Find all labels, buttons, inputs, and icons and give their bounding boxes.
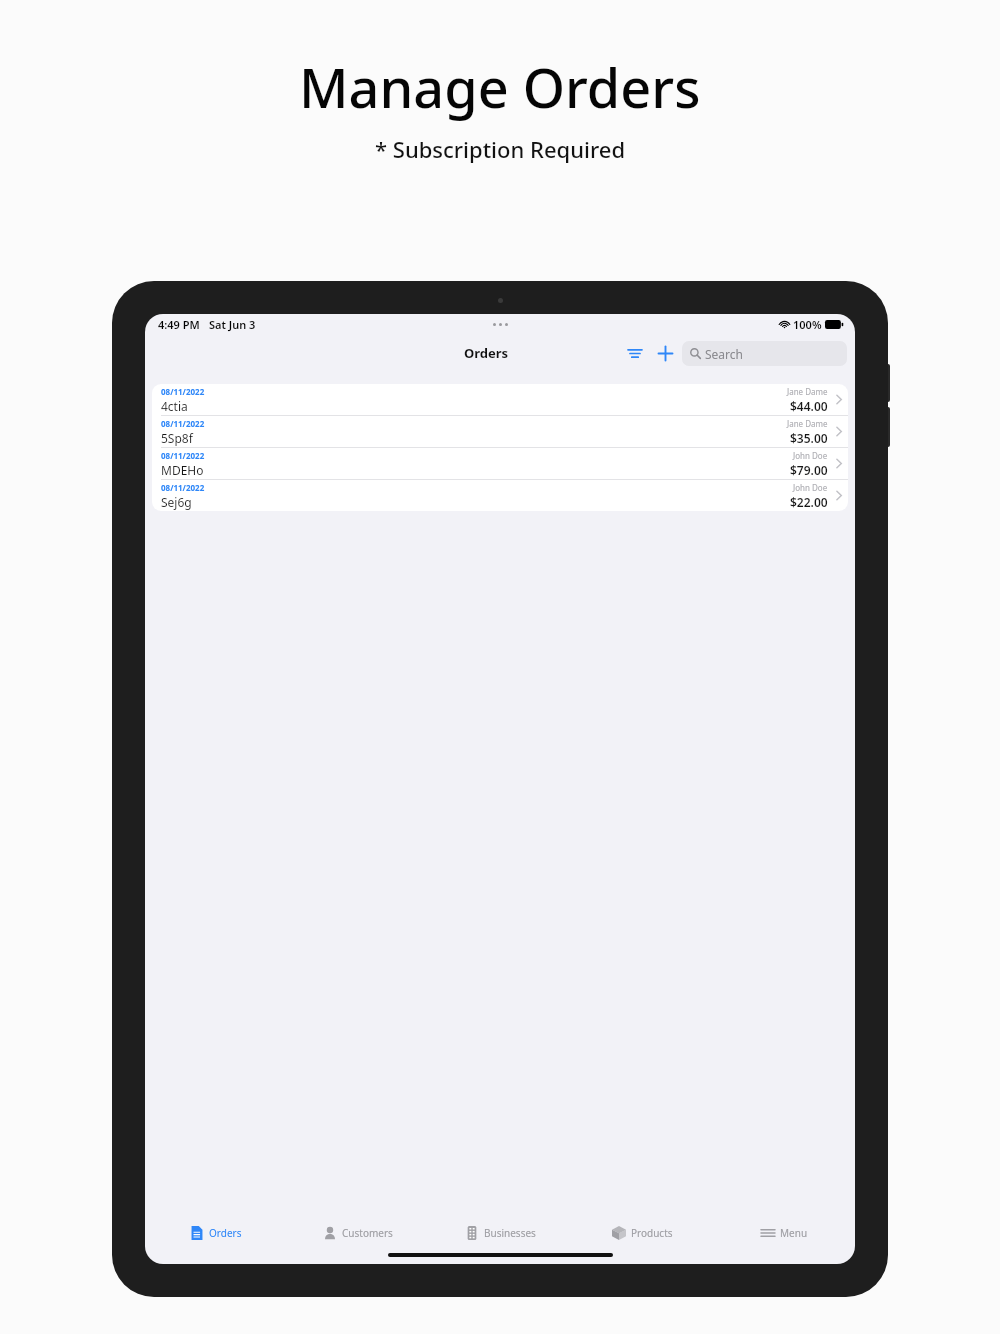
staticText: $35.00 — [790, 430, 828, 446]
staticText: Orders — [464, 344, 509, 362]
staticText: Manage Orders — [299, 50, 701, 124]
staticText: 5Sp8f — [161, 430, 193, 446]
staticText: Customers — [342, 1226, 393, 1240]
staticText: Businesses — [484, 1226, 536, 1240]
staticText: Orders — [209, 1226, 242, 1240]
staticText: Jane Dame — [787, 418, 828, 429]
button[interactable]: Businesses — [429, 1216, 571, 1250]
staticText: Search — [705, 346, 743, 362]
staticText: $44.00 — [790, 398, 828, 414]
button[interactable]: 08/11/2022 — [152, 480, 848, 511]
staticText: Menu — [780, 1226, 808, 1240]
button[interactable]: Filter — [622, 340, 648, 366]
staticText: Products — [631, 1226, 673, 1240]
staticText: 4ctia — [161, 398, 188, 414]
staticText: $22.00 — [790, 494, 828, 510]
button[interactable]: 08/11/2022 — [152, 384, 848, 415]
staticText: John Doe — [793, 450, 828, 461]
staticText: 08/11/2022 — [161, 418, 205, 429]
staticText: 4:49 PM — [158, 317, 200, 332]
button[interactable]: 08/11/2022 — [152, 448, 848, 479]
button[interactable]: 08/11/2022 — [152, 416, 848, 447]
button[interactable]: Customers — [287, 1216, 429, 1250]
staticText: Sej6g — [161, 494, 192, 510]
staticText: MDEHo — [161, 462, 204, 478]
button[interactable]: Products — [571, 1216, 713, 1250]
staticText: 08/11/2022 — [161, 482, 205, 493]
staticText: 100% — [793, 317, 822, 332]
button[interactable]: Add order — [652, 340, 678, 366]
staticText: Jane Dame — [787, 386, 828, 397]
staticText: 08/11/2022 — [161, 386, 205, 397]
button[interactable]: Search — [682, 341, 847, 366]
staticText: 08/11/2022 — [161, 450, 205, 461]
staticText: John Doe — [793, 482, 828, 493]
staticText: * Subscription Required — [375, 134, 626, 164]
button[interactable]: Orders — [145, 1216, 287, 1250]
staticText: $79.00 — [790, 462, 828, 478]
button[interactable]: Menu — [713, 1216, 855, 1250]
staticText: Sat Jun 3 — [209, 317, 256, 332]
